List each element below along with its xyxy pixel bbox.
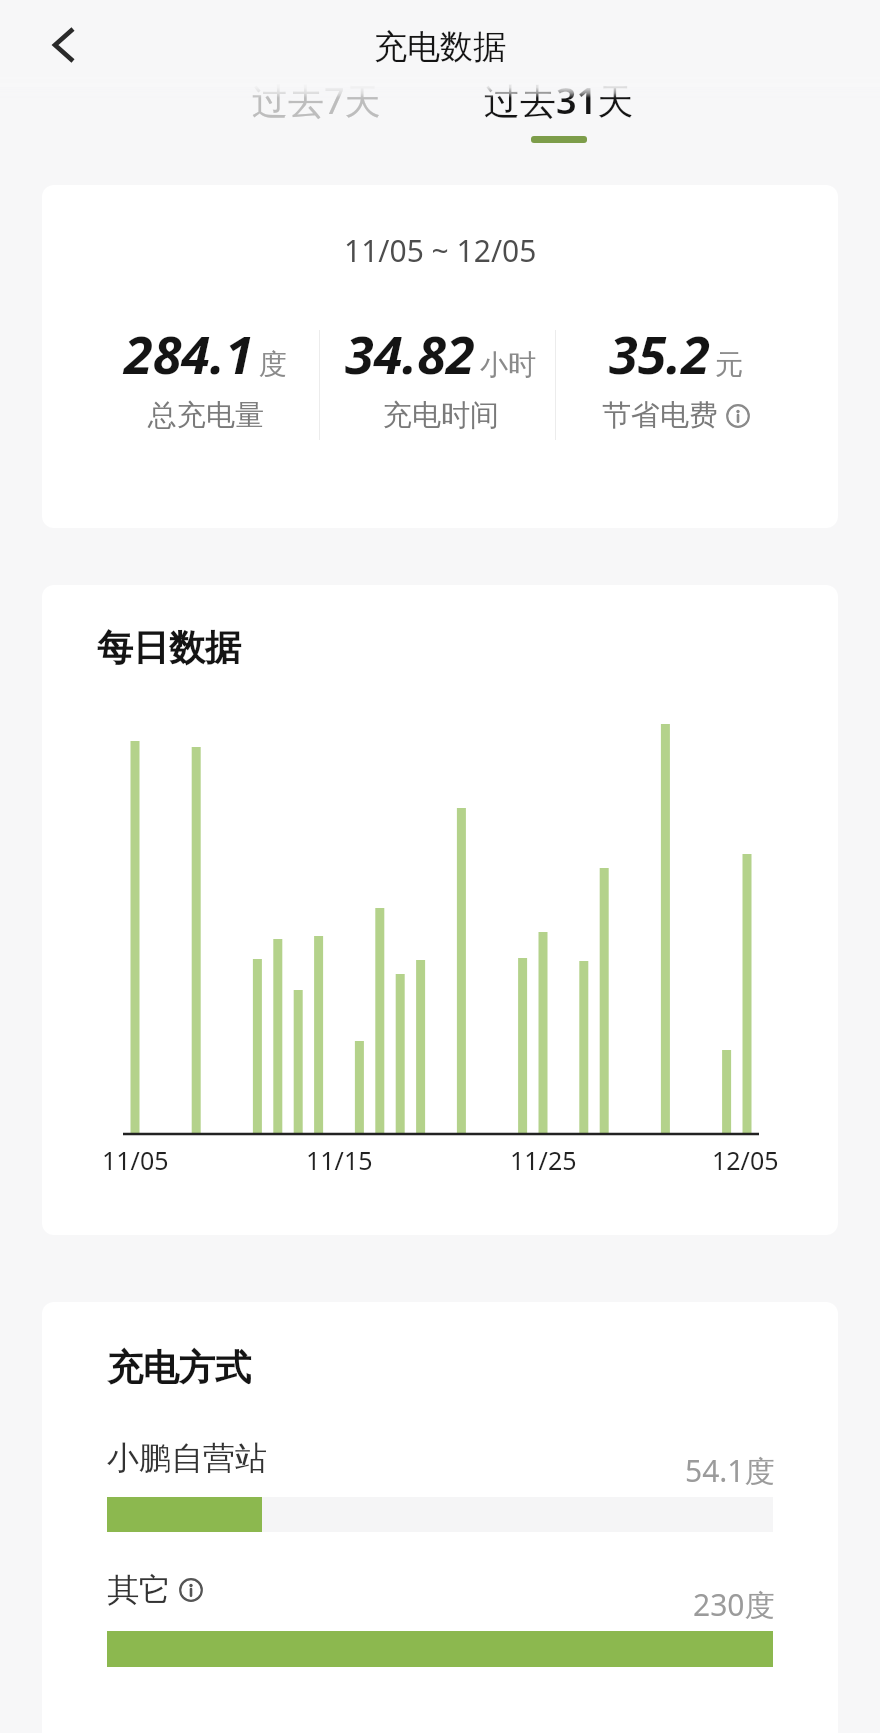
staticText: 11/05 ~ 12/05: [344, 230, 537, 271]
staticText: 34.82: [345, 318, 475, 389]
staticText: 11/15: [306, 1143, 373, 1177]
staticText: 每日数据: [97, 625, 241, 670]
staticText: 230度: [693, 1584, 775, 1625]
staticText: 节省电费: [602, 397, 718, 434]
staticText: 充电时间: [383, 397, 499, 434]
button[interactable]: [38, 19, 90, 71]
staticText: 小鹏自营站: [107, 1438, 267, 1478]
staticText: 充电数据: [374, 26, 506, 68]
staticText: 小时: [480, 347, 536, 382]
staticText: 11/05: [102, 1143, 169, 1177]
staticText: 过去31天: [484, 76, 634, 125]
staticText: 充电方式: [107, 1345, 251, 1390]
button[interactable]: 过去31天: [459, 74, 659, 126]
staticText: 其它: [107, 1570, 171, 1610]
staticText: 35.2: [609, 318, 710, 389]
staticText: 11/25: [510, 1143, 577, 1177]
staticText: 总充电量: [148, 397, 264, 434]
staticText: 12/05: [712, 1143, 779, 1177]
staticText: 过去7天: [252, 76, 381, 125]
button[interactable]: [107, 1497, 773, 1532]
button[interactable]: 过去7天: [216, 74, 416, 126]
staticText: 284.1: [124, 318, 254, 389]
staticText: 元: [715, 347, 743, 382]
staticText: 54.1度: [685, 1450, 775, 1491]
staticText: 度: [259, 347, 287, 382]
